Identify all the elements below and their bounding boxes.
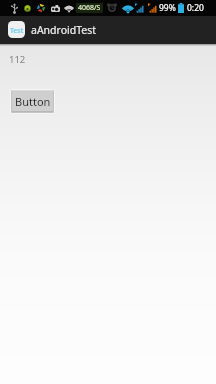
staticText: Button: [15, 94, 51, 109]
staticText: aAndroidTest: [31, 23, 97, 37]
staticText: 112: [9, 53, 26, 66]
staticText: 0:20: [187, 2, 204, 14]
staticText: 99%: [159, 2, 176, 14]
staticText: 4068/S: [78, 3, 101, 13]
button[interactable]: App icon: [8, 21, 25, 38]
staticText: Test: [10, 26, 24, 35]
button[interactable]: Button: [10, 89, 55, 114]
